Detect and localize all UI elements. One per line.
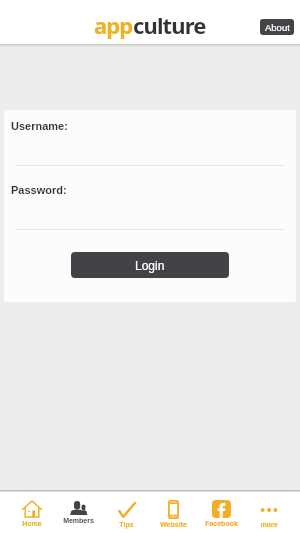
staticText: Tips <box>119 521 134 529</box>
button[interactable]: Facebook <box>198 492 245 528</box>
button[interactable]: Website <box>150 492 197 529</box>
staticText: Username: <box>11 120 68 132</box>
staticText: culture <box>133 10 206 40</box>
staticText: Members <box>63 517 94 525</box>
button[interactable]: Tips <box>103 492 150 529</box>
button[interactable]: Home <box>8 492 55 528</box>
staticText: Website <box>160 521 187 529</box>
staticText: Facebook <box>205 520 238 528</box>
staticText: more <box>260 521 278 529</box>
staticText: About <box>265 22 290 33</box>
staticText: app <box>94 10 133 40</box>
button[interactable]: Login <box>71 252 229 278</box>
staticText: Login <box>135 259 165 272</box>
button[interactable]: About <box>260 19 294 35</box>
staticText: Home <box>22 520 42 528</box>
button[interactable]: Members <box>55 492 102 525</box>
button[interactable]: More <box>245 492 292 529</box>
staticText: Password: <box>11 184 67 196</box>
